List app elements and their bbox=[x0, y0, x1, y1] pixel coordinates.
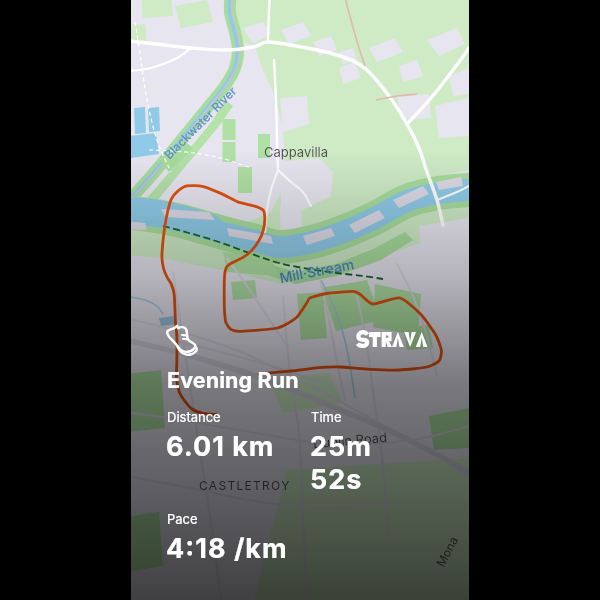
staticText: Evening Run bbox=[167, 367, 299, 393]
staticText: Cappavilla bbox=[264, 144, 329, 160]
staticText: CASTLETROY bbox=[199, 478, 291, 493]
staticText: 25m 52s bbox=[310, 430, 372, 496]
staticText: Blackwater River bbox=[161, 83, 240, 162]
staticText: Dublin Road bbox=[312, 429, 388, 451]
staticText: Mill·Stream bbox=[278, 255, 356, 286]
button[interactable]: Strava bbox=[357, 332, 428, 347]
staticText: Pace bbox=[167, 511, 198, 527]
staticText: 4:18 /km bbox=[166, 532, 288, 565]
button[interactable]: Running shoe bbox=[162, 318, 202, 358]
staticText: 6.01 km bbox=[166, 430, 275, 463]
staticText: Mona bbox=[433, 534, 461, 569]
staticText: Time bbox=[311, 409, 342, 425]
staticText: Distance bbox=[167, 409, 221, 425]
